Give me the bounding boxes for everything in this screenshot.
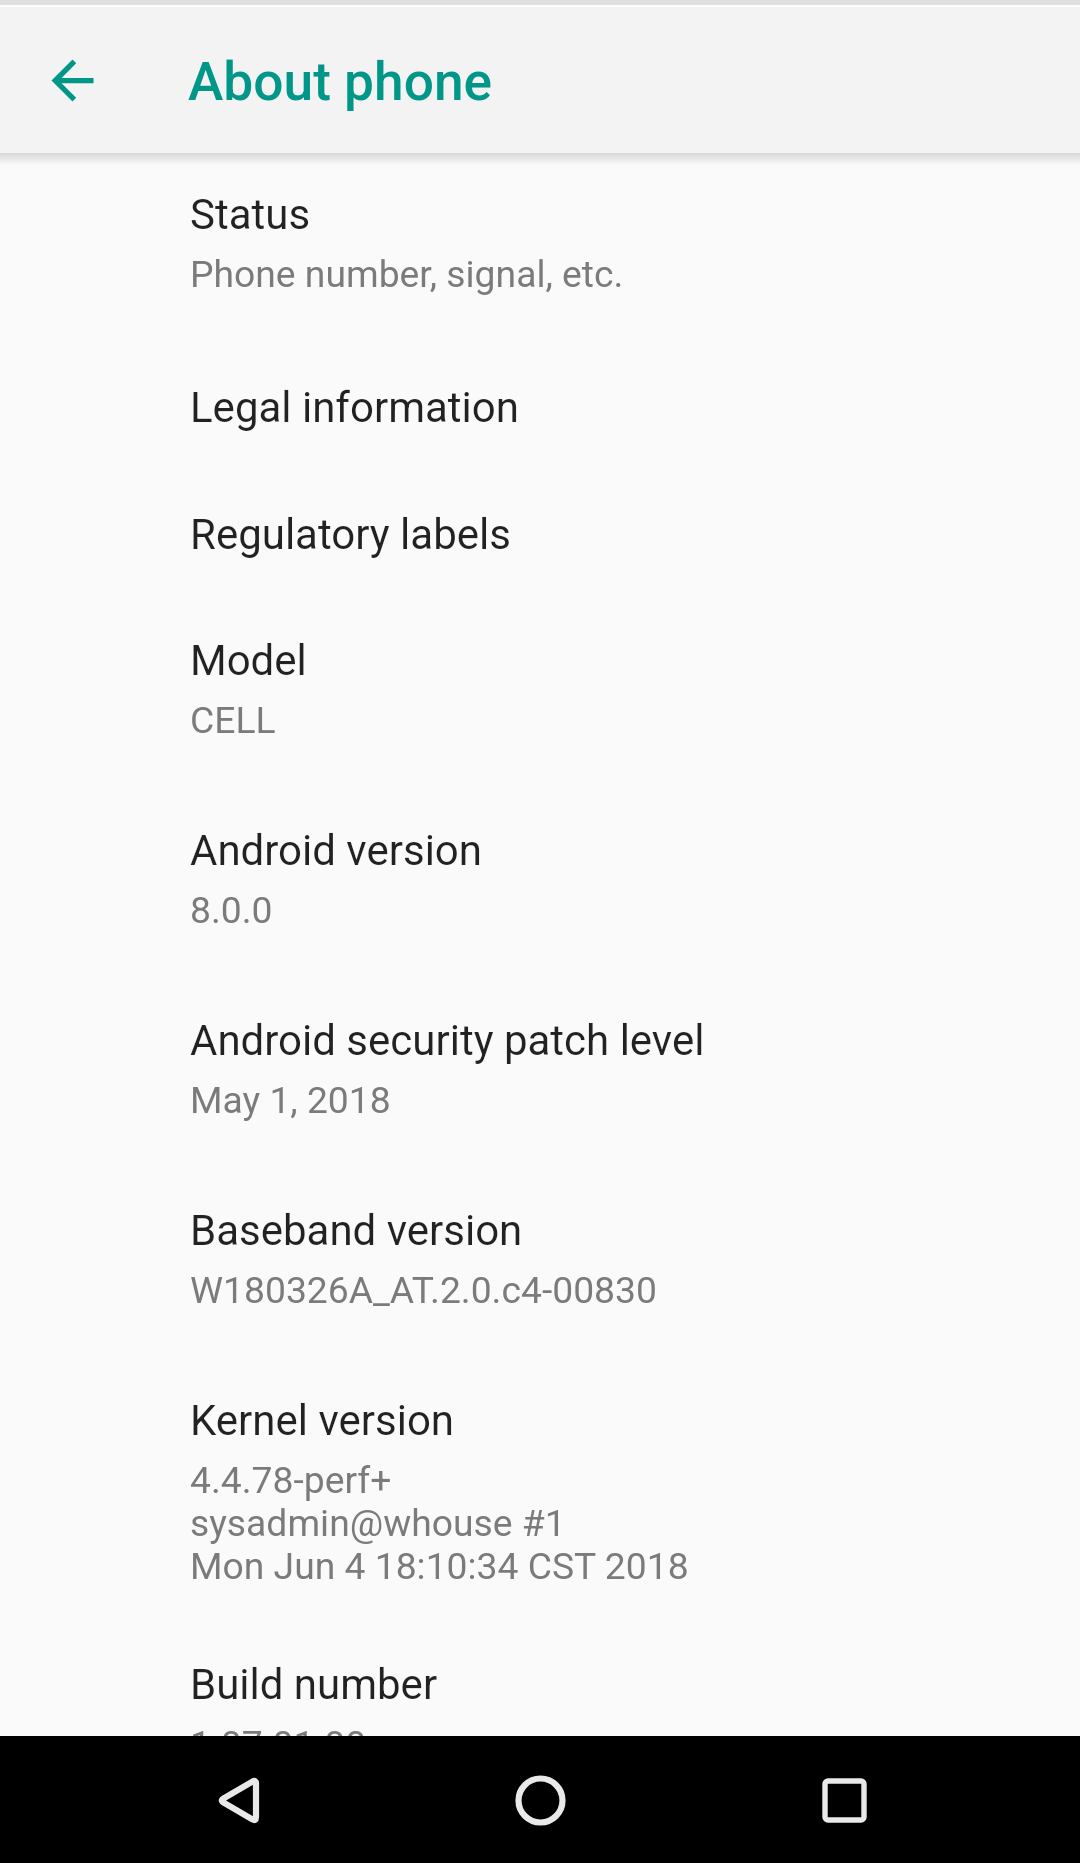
button[interactable]: Kernel version <box>0 1369 1080 1633</box>
staticText: About phone <box>188 51 493 113</box>
button[interactable]: Legal information <box>0 355 1080 482</box>
staticText: 1.07.01.00 <box>190 1722 367 1736</box>
button[interactable]: Android version <box>0 799 1080 989</box>
button[interactable]: Model <box>0 609 1080 799</box>
staticText: Baseband version <box>190 1206 523 1255</box>
button[interactable]: Back <box>173 1737 299 1863</box>
staticText: Build number <box>190 1660 438 1709</box>
staticText: Kernel version <box>190 1396 455 1445</box>
staticText: 8.0.0 <box>190 888 273 932</box>
staticText: W180326A_AT.2.0.c4-00830 <box>190 1268 657 1312</box>
button[interactable]: Home <box>477 1737 603 1863</box>
button[interactable]: Android security patch level <box>0 989 1080 1179</box>
staticText: 4.4.78-perf+ sysadmin@whouse #1 Mon Jun … <box>190 1458 689 1588</box>
button[interactable]: Baseband version <box>0 1179 1080 1369</box>
staticText: Phone number, signal, etc. <box>190 252 624 296</box>
staticText: Regulatory labels <box>190 510 511 559</box>
staticText: Model <box>190 636 307 685</box>
staticText: Legal information <box>190 383 519 432</box>
button[interactable]: Build number <box>0 1633 1080 1736</box>
staticText: May 1, 2018 <box>190 1078 391 1122</box>
button[interactable]: Status <box>0 165 1080 355</box>
staticText: Status <box>190 190 311 239</box>
button[interactable]: Navigate up <box>9 17 135 143</box>
button[interactable]: Recent apps <box>781 1737 907 1863</box>
staticText: Android version <box>190 826 482 875</box>
staticText: CELL <box>190 698 276 742</box>
button[interactable]: Regulatory labels <box>0 482 1080 609</box>
staticText: Android security patch level <box>190 1016 705 1065</box>
